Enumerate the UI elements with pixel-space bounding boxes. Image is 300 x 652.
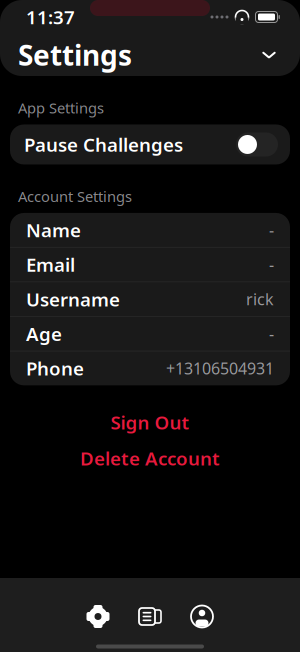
staticText: Name — [26, 218, 81, 242]
staticText: Phone — [26, 356, 84, 381]
button[interactable]: Username — [10, 282, 290, 316]
staticText: Email — [26, 252, 75, 277]
staticText: Pause Challenges — [24, 132, 183, 157]
button[interactable]: Collapse Settings — [252, 38, 286, 72]
staticText: Age — [26, 321, 62, 346]
staticText: App Settings — [18, 98, 104, 117]
staticText: Username — [26, 287, 120, 312]
button[interactable]: Feed — [128, 596, 172, 636]
staticText: +13106504931 — [166, 358, 274, 379]
button[interactable]: Profile — [180, 596, 224, 636]
staticText: Delete Account — [80, 446, 220, 471]
staticText: rick — [246, 288, 274, 310]
button[interactable]: Delete Account — [10, 447, 290, 469]
staticText: - — [269, 254, 274, 275]
button[interactable]: Settings — [76, 596, 120, 636]
staticText: Sign Out — [110, 410, 189, 435]
button[interactable]: Sign Out — [10, 411, 290, 433]
staticText: Settings — [18, 36, 132, 74]
button[interactable]: Age — [10, 317, 290, 351]
button[interactable]: Pause Challenges — [10, 124, 290, 164]
button[interactable]: Phone — [10, 351, 290, 385]
staticText: - — [269, 323, 274, 344]
staticText: - — [269, 219, 274, 240]
staticText: 11:37 — [26, 5, 75, 29]
button[interactable]: Email — [10, 248, 290, 282]
button[interactable]: Name — [10, 213, 290, 247]
staticText: Account Settings — [18, 186, 132, 206]
